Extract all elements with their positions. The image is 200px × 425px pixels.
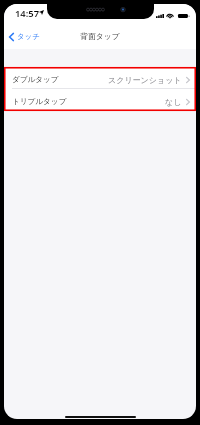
button[interactable]: ダブルタップ: [4, 67, 196, 89]
staticText: 14:57: [15, 7, 40, 20]
staticText: 背面タップ: [80, 31, 120, 41]
staticText: タッチ: [17, 32, 40, 41]
button[interactable]: タッチ: [4, 29, 46, 44]
button[interactable]: トリプルタップ: [4, 89, 196, 111]
staticText: トリプルタップ: [12, 97, 67, 107]
staticText: スクリーンショット: [108, 75, 182, 85]
staticText: ダブルタップ: [12, 75, 59, 85]
staticText: なし: [165, 97, 182, 107]
